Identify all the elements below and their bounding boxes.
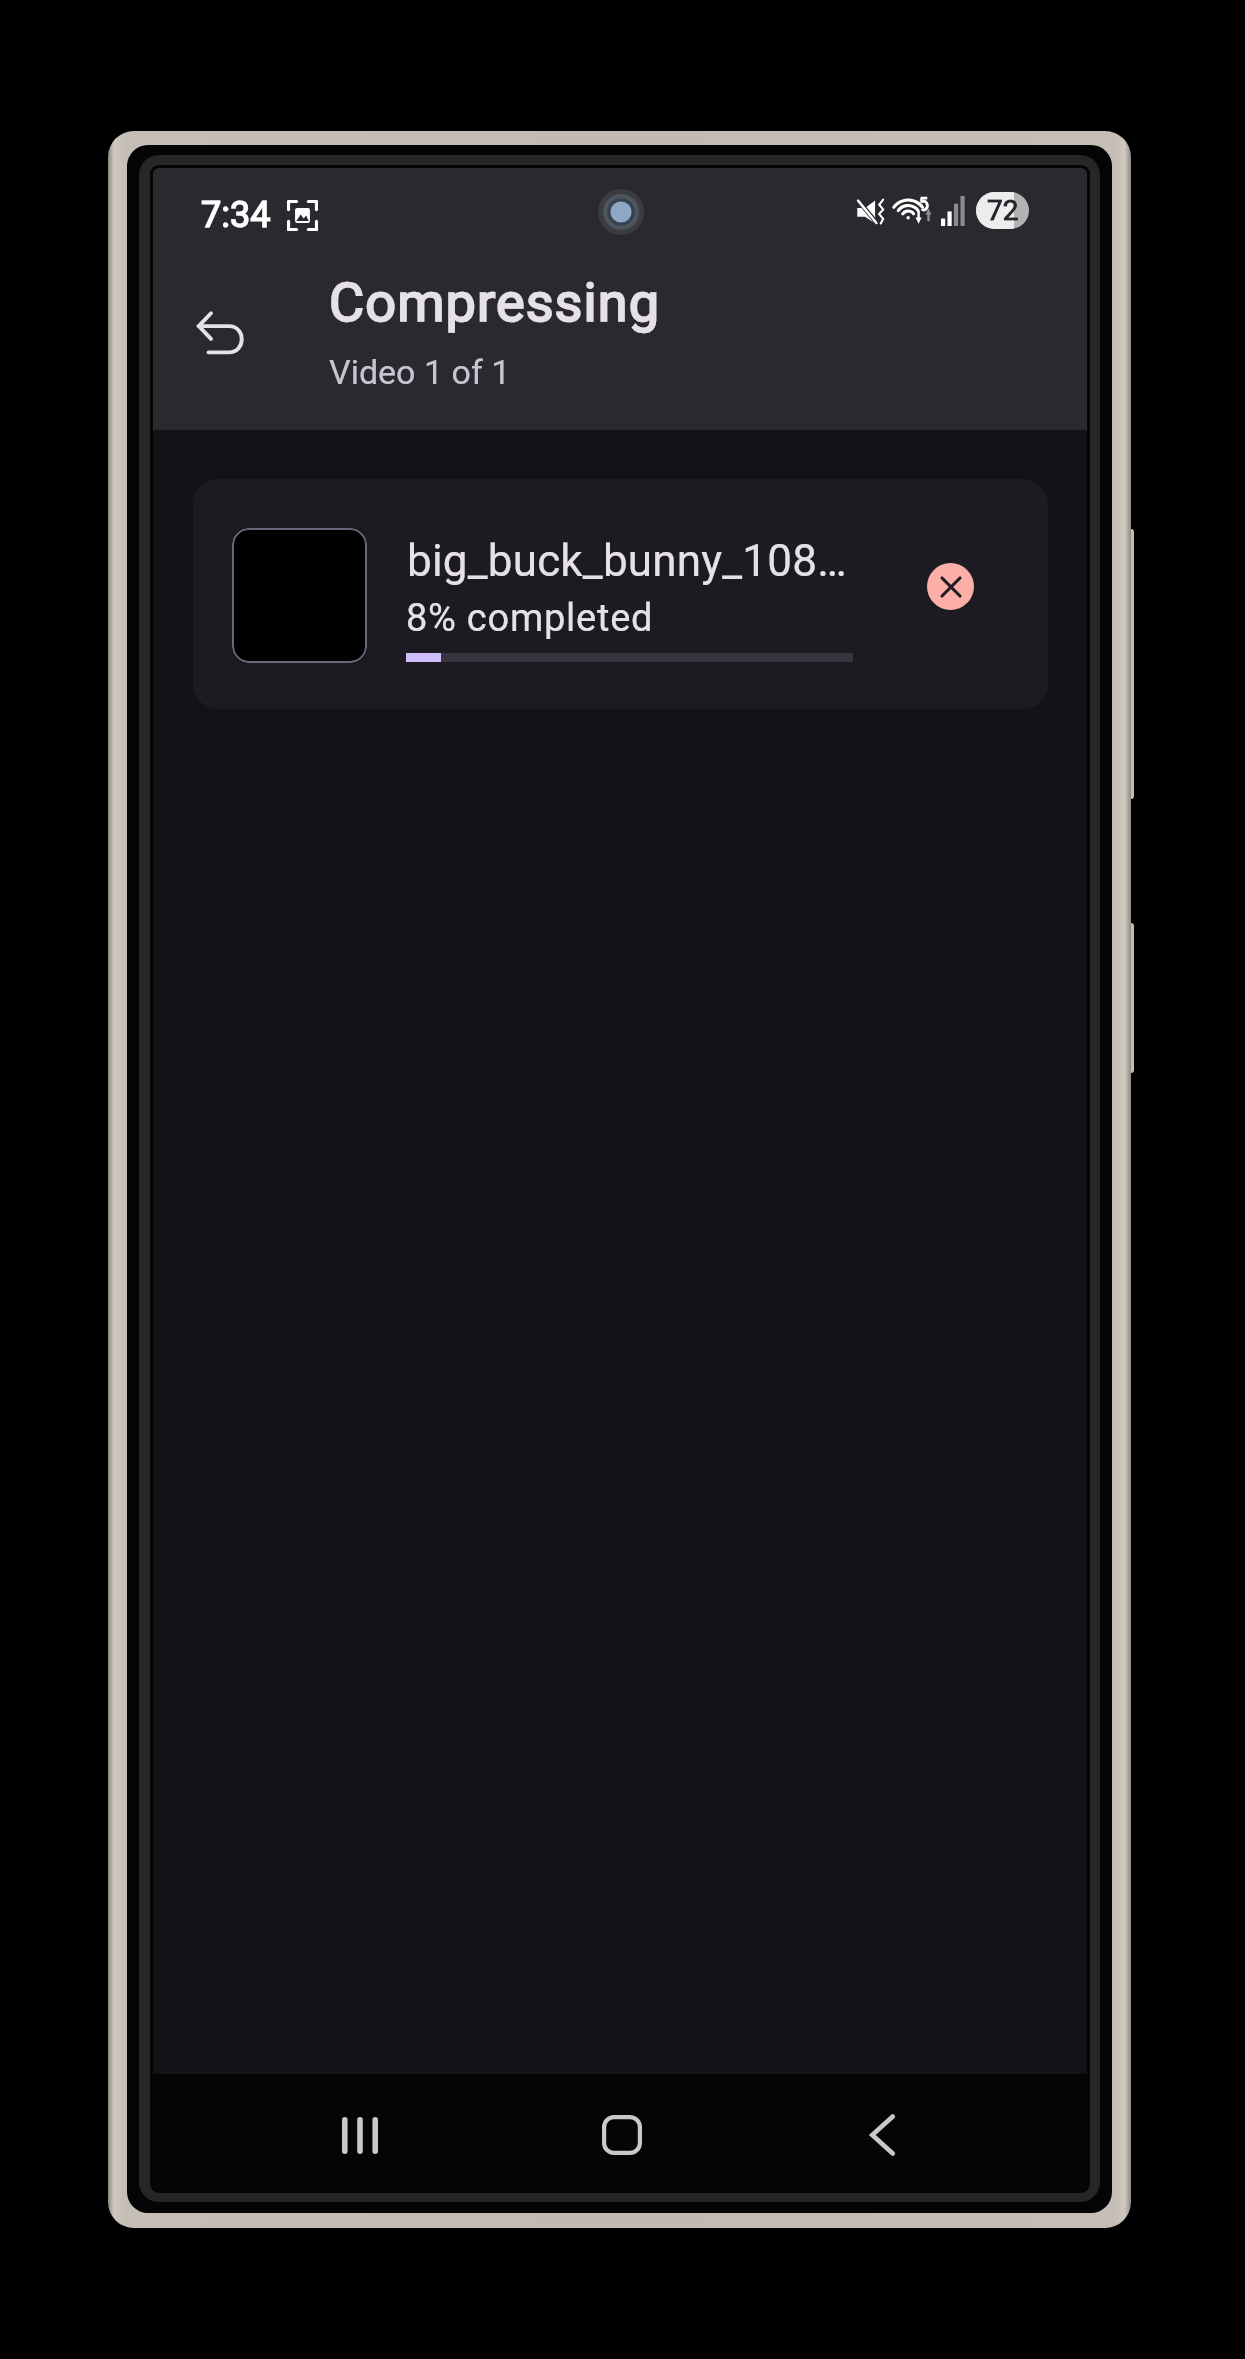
staticText: 7:34 bbox=[201, 194, 271, 236]
button[interactable]: Back bbox=[832, 2085, 932, 2185]
staticText: Video 1 of 1 bbox=[329, 352, 511, 392]
button[interactable]: Home bbox=[572, 2085, 672, 2185]
staticText: 72 bbox=[987, 194, 1019, 227]
button[interactable]: big_buck_bunny_108… bbox=[193, 479, 1048, 709]
button[interactable]: Recent apps bbox=[310, 2085, 410, 2185]
button[interactable]: Back bbox=[173, 285, 269, 381]
staticText: big_buck_bunny_108… bbox=[407, 535, 847, 587]
button[interactable]: Cancel compression bbox=[927, 563, 974, 610]
staticText: 8% completed bbox=[406, 596, 654, 641]
staticText: Compressing bbox=[329, 271, 661, 334]
